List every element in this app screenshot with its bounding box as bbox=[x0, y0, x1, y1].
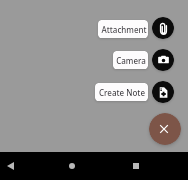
staticText: Camera bbox=[116, 55, 146, 66]
button[interactable]: Create Note bbox=[152, 81, 174, 103]
button[interactable]: Camera bbox=[113, 51, 148, 69]
button[interactable]: Attachment bbox=[98, 20, 148, 38]
button[interactable]: Camera bbox=[152, 49, 174, 71]
button[interactable]: Create Note bbox=[95, 83, 148, 101]
staticText: Create Note bbox=[99, 87, 145, 98]
button[interactable]: Recent apps bbox=[129, 159, 143, 173]
staticText: Attachment bbox=[101, 24, 147, 35]
button[interactable]: Back bbox=[3, 159, 17, 173]
button[interactable]: Close menu bbox=[149, 113, 181, 145]
button[interactable]: Home bbox=[65, 159, 79, 173]
button[interactable]: Attachment bbox=[152, 17, 174, 39]
